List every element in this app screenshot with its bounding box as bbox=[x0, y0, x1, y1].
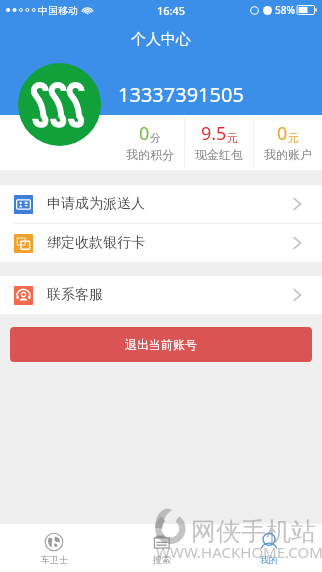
staticText: 现金红包 bbox=[195, 147, 243, 162]
staticText: 联系客服 bbox=[47, 286, 103, 304]
staticText: 13337391505 bbox=[118, 81, 244, 108]
staticText: 0 bbox=[277, 121, 288, 146]
button[interactable]: 搜索 bbox=[108, 524, 215, 572]
staticText: 元 bbox=[288, 131, 299, 145]
staticText: 中国移动 bbox=[38, 4, 78, 17]
staticText: 16:45 bbox=[157, 3, 186, 18]
staticText: 我的账户 bbox=[264, 147, 312, 162]
button[interactable]: 绑定收款银行卡 bbox=[0, 224, 322, 262]
staticText: 分 bbox=[150, 131, 161, 145]
staticText: 58% bbox=[275, 3, 295, 17]
staticText: 退出当前账号 bbox=[125, 337, 197, 352]
staticText: 绑定收款银行卡 bbox=[47, 234, 145, 252]
staticText: 0 bbox=[139, 121, 150, 146]
button[interactable]: 9.5 bbox=[185, 115, 253, 170]
staticText: 元 bbox=[227, 131, 238, 145]
button[interactable]: 退出当前账号 bbox=[10, 327, 312, 362]
staticText: 网侠手机站 bbox=[191, 516, 316, 547]
button[interactable]: 我的 bbox=[215, 524, 322, 572]
staticText: 搜索 bbox=[153, 554, 171, 565]
staticText: 个人中心 bbox=[131, 30, 191, 49]
button[interactable]: 0 bbox=[115, 115, 184, 170]
button[interactable]: 申请成为派送人 bbox=[0, 185, 322, 223]
staticText: WWW.HACKHOME.COM bbox=[156, 542, 322, 562]
button[interactable]: 联系客服 bbox=[0, 276, 322, 314]
staticText: 我的 bbox=[260, 554, 278, 565]
staticText: 申请成为派送人 bbox=[47, 195, 145, 213]
button[interactable]: 0 bbox=[254, 115, 322, 170]
staticText: 车卫士 bbox=[41, 554, 68, 565]
staticText: 9.5 bbox=[201, 121, 227, 146]
staticText: 我的积分 bbox=[126, 147, 174, 162]
button[interactable]: 车卫士 bbox=[0, 524, 108, 572]
